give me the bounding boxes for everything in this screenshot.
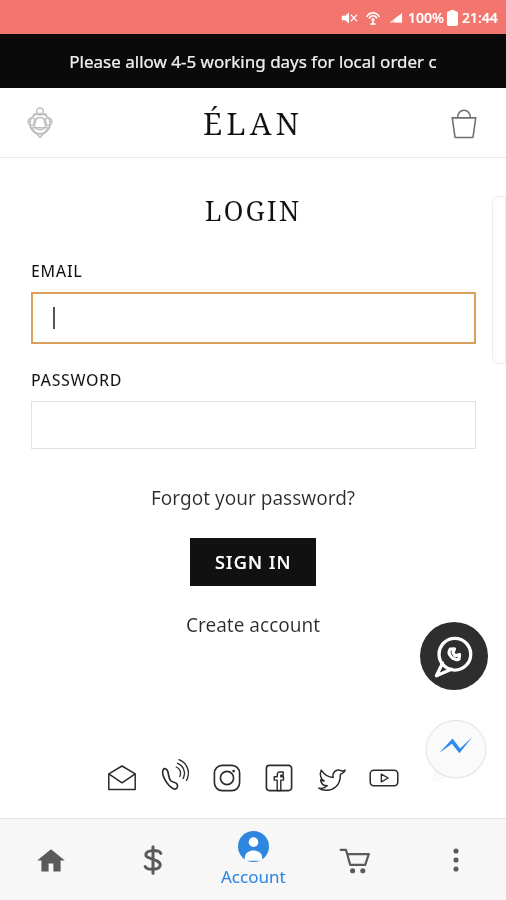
staticText: 21:44 [462, 8, 498, 27]
button[interactable]: Cart [304, 819, 405, 900]
button[interactable]: Messenger [422, 718, 490, 786]
staticText: SIGN IN [215, 550, 292, 575]
staticText: ÉLAN [203, 102, 304, 144]
staticText: Please allow 4-5 working days for local … [69, 50, 437, 73]
staticText: EMAIL [31, 260, 83, 282]
button[interactable]: YouTube [366, 760, 402, 796]
button[interactable]: More [405, 819, 506, 900]
button[interactable]: Twitter [314, 760, 350, 796]
button[interactable] [31, 401, 476, 449]
staticText: Forgot your password? [151, 485, 356, 511]
button[interactable]: Create account [176, 608, 331, 642]
button[interactable]: Instagram [209, 760, 245, 796]
button[interactable]: WhatsApp [420, 622, 488, 690]
staticText: 100% [408, 8, 444, 27]
button[interactable]: Call [156, 760, 192, 796]
button[interactable]: SIGN IN [190, 538, 316, 586]
button[interactable]: Account [203, 819, 304, 900]
button[interactable]: Prices [102, 819, 203, 900]
button[interactable]: Shopping bag [442, 101, 486, 145]
staticText: PASSWORD [31, 369, 123, 391]
staticText: Create account [186, 612, 321, 638]
button[interactable]: Side panel [492, 196, 506, 364]
button[interactable]: Forgot your password? [141, 481, 366, 515]
button[interactable]: Menu crest [18, 101, 62, 145]
staticText: Account [221, 865, 286, 888]
button[interactable]: Home [0, 819, 102, 900]
button[interactable]: Facebook [261, 760, 297, 796]
button[interactable]: Email [104, 760, 140, 796]
button[interactable] [31, 292, 476, 344]
staticText: LOGIN [0, 192, 506, 229]
